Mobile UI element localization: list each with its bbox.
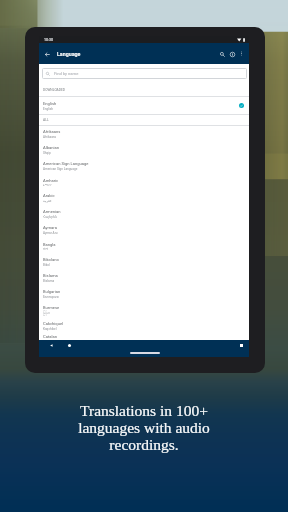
staticText: Arabic (43, 193, 55, 198)
staticText: Burmese (43, 305, 60, 310)
staticText: Kaqchikel (43, 327, 57, 331)
staticText: DOWNLOADED (43, 88, 65, 92)
button[interactable]: Bikolano (39, 254, 249, 270)
staticText: العربية (43, 199, 52, 203)
button[interactable]: Home (64, 340, 75, 351)
staticText: Bikol (43, 263, 50, 267)
button[interactable]: Cakchiquel (39, 318, 249, 334)
staticText: Aymar Aru (43, 231, 58, 235)
staticText: বাংলা (43, 248, 48, 251)
staticText: English (43, 101, 57, 106)
button[interactable]: Afrikaans (39, 126, 249, 142)
button[interactable]: Armenian (39, 206, 249, 222)
staticText: Shqip (43, 151, 51, 155)
staticText: Bulgarian (43, 289, 61, 294)
staticText: Bislama (43, 279, 55, 283)
staticText: မြန်မာ (43, 311, 50, 316)
button[interactable]: Burmese (39, 302, 249, 318)
staticText: Albanian (43, 145, 59, 150)
staticText: 10:30 (44, 38, 53, 42)
staticText: Cakchiquel (43, 321, 64, 326)
button[interactable]: English (39, 97, 249, 114)
button[interactable]: Find by name (42, 68, 247, 79)
staticText: Aymara (43, 225, 57, 230)
button[interactable]: Catalan (39, 334, 249, 340)
staticText: Armenian (43, 209, 61, 214)
staticText: English (43, 107, 54, 111)
button[interactable]: Navigate up (41, 48, 53, 60)
staticText: ALL (43, 118, 49, 122)
button[interactable]: Bangla (39, 238, 249, 254)
button[interactable]: Back (46, 340, 57, 351)
staticText: Български (43, 295, 59, 299)
staticText: Catalan (43, 334, 57, 339)
staticText: Bislama (43, 273, 58, 278)
button[interactable]: Bislama (39, 270, 249, 286)
staticText: Bikolano (43, 257, 59, 262)
button[interactable]: American Sign Language (39, 158, 249, 174)
staticText: Afrikaans (43, 129, 61, 134)
staticText: Translations in 100+ languages with audi… (78, 402, 210, 453)
button[interactable]: Albanian (39, 142, 249, 158)
staticText: አማርኛ (43, 184, 52, 187)
button[interactable]: Recent apps (236, 340, 247, 351)
staticText: Amharic (43, 178, 59, 183)
staticText: American Sign Language (43, 161, 89, 166)
staticText: Afrikaans (43, 135, 57, 139)
staticText: Bangla (43, 242, 56, 247)
button[interactable]: Arabic (39, 190, 249, 206)
staticText: Language (57, 51, 81, 57)
staticText: Find by name (54, 71, 79, 76)
button[interactable]: Bulgarian (39, 286, 249, 302)
button[interactable]: Aymara (39, 222, 249, 238)
button[interactable]: More options (237, 49, 246, 58)
button[interactable]: Amharic (39, 174, 249, 190)
staticText: American Sign Language (43, 167, 78, 171)
button[interactable]: Information (227, 49, 237, 59)
staticText: Հայերեն (43, 215, 57, 219)
button[interactable]: Search (217, 49, 227, 59)
